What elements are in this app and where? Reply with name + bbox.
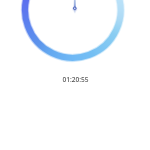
staticText: 01:20:55 xyxy=(62,75,89,84)
button[interactable]: Timer progress dial xyxy=(20,0,126,62)
button[interactable]: 01:20:55 xyxy=(56,70,95,89)
